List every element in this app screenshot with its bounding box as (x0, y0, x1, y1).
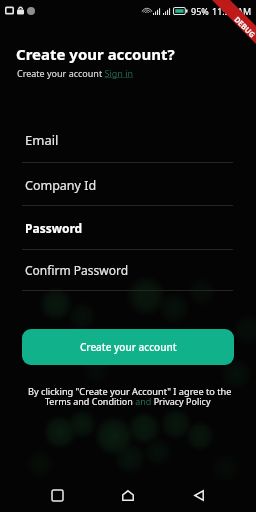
staticText: By clicking "Create your Account" I agre… (28, 385, 232, 398)
staticText: Email (25, 131, 59, 149)
button[interactable]: Home (108, 475, 148, 512)
staticText: Confirm Password (25, 262, 129, 278)
staticText: Password (25, 220, 83, 236)
button[interactable]: Create your account (22, 329, 234, 365)
staticText: Create your account? (16, 44, 175, 64)
staticText: Create your account Sign in (17, 67, 134, 79)
staticText: Terms and Condition and Privacy Policy (45, 395, 211, 407)
staticText: Company Id (25, 177, 97, 194)
button[interactable]: Password (0, 213, 256, 257)
staticText: Create your account (80, 340, 177, 354)
button[interactable]: Email (0, 124, 256, 168)
button[interactable]: Confirm Password (0, 255, 256, 299)
button[interactable]: Back (179, 475, 219, 512)
button[interactable]: Recent apps (37, 475, 77, 512)
staticText: 11:28 AM (212, 5, 252, 17)
staticText: 95% (191, 5, 209, 17)
button[interactable]: By clicking "Create your Account" I agre… (0, 383, 256, 413)
button[interactable]: Create your account Sign in (17, 67, 134, 79)
staticText: DEBUG (232, 14, 256, 40)
button[interactable]: Company Id (0, 170, 256, 214)
